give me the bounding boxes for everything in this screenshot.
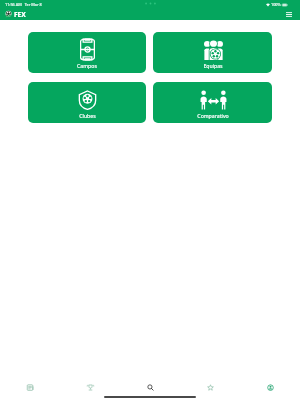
staticText: 100%	[271, 2, 281, 7]
staticText: 11:56 AM Ter Mar 8	[5, 2, 42, 7]
staticText: Comparativo	[197, 112, 229, 119]
button[interactable]: Menu	[284, 10, 293, 18]
staticText: FEX	[14, 10, 26, 19]
button[interactable]: Notícias	[0, 380, 60, 394]
button[interactable]: Pesquisa	[120, 380, 180, 394]
button[interactable]: Competições	[60, 380, 120, 394]
button[interactable]: Perfil	[240, 380, 300, 394]
button[interactable]: Comparativo	[153, 82, 272, 123]
button[interactable]: Favoritos	[180, 380, 240, 394]
button[interactable]: Campos	[28, 32, 146, 73]
staticText: Equipas	[203, 62, 223, 69]
button[interactable]: Equipas	[153, 32, 272, 73]
staticText: Clubes	[79, 112, 96, 119]
button[interactable]: Clubes	[28, 82, 146, 123]
staticText: Campos	[77, 62, 97, 69]
